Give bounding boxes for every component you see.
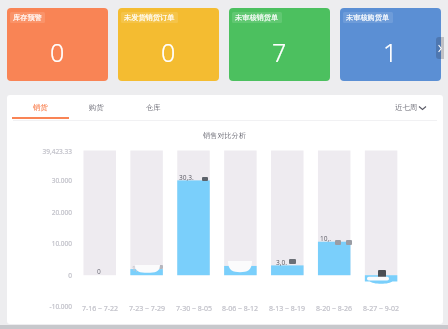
staticText: 20.000 <box>0 208 72 217</box>
staticText: 7-30 ~ 8-05 <box>164 304 224 314</box>
button[interactable]: 仓库 <box>125 95 182 119</box>
staticText: 1 <box>383 35 398 69</box>
staticText: 10,. <box>320 234 332 243</box>
staticText: 8-06 ~ 8-12 <box>210 304 270 314</box>
staticText: 7-23 ~ 7-29 <box>117 304 177 314</box>
staticText: 0 <box>97 267 101 276</box>
staticText: 销货 <box>33 103 48 112</box>
staticText: 8-27 ~ 9-02 <box>351 304 411 314</box>
staticText: 0 <box>0 271 72 280</box>
staticText: 30.000 <box>0 176 72 185</box>
staticText: 10.000 <box>0 239 72 248</box>
staticText: 7-16 ~ 7-22 <box>70 304 130 314</box>
staticText: 0 <box>161 35 176 69</box>
button[interactable]: 未审核购货单 <box>340 8 441 81</box>
staticText: 近七周 <box>395 103 418 112</box>
staticText: 30,3. <box>179 173 194 182</box>
staticText: 未审核购货单 <box>346 13 390 22</box>
button[interactable]: 库存预警 <box>7 8 108 81</box>
staticText: 库存预警 <box>13 13 42 22</box>
staticText: 7 <box>272 35 287 69</box>
button[interactable]: 销货 <box>12 95 69 119</box>
staticText: 39,423.33 <box>0 147 72 156</box>
staticText: 8-13 ~ 8-19 <box>257 304 317 314</box>
staticText: 购货 <box>89 103 104 112</box>
button[interactable]: 未发货销货订单 <box>118 8 219 81</box>
button[interactable]: Next <box>436 37 444 59</box>
staticText: 1,9 <box>132 264 142 273</box>
staticText: 0 <box>50 35 65 69</box>
button[interactable]: 未审核销货单 <box>229 8 330 81</box>
staticText: 未发货销货订单 <box>124 13 175 22</box>
staticText: 销售对比分析 <box>203 131 247 140</box>
staticText: 8-20 ~ 8-26 <box>304 304 364 314</box>
button[interactable]: 购货 <box>68 95 125 119</box>
staticText: 仓库 <box>146 103 161 112</box>
button[interactable]: 近七周 <box>395 98 426 117</box>
staticText: 未审核销货单 <box>235 13 279 22</box>
staticText: 3,0. <box>276 258 288 267</box>
staticText: -10.000 <box>0 302 72 311</box>
